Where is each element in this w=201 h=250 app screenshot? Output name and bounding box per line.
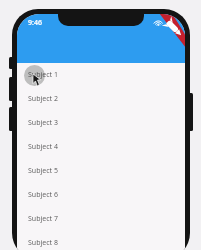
button[interactable]: Subject 3 [17,111,185,135]
staticText: 9:46 [28,18,42,28]
staticText: Subject 5 [28,166,58,176]
button[interactable]: Subject 6 [17,183,185,207]
button[interactable]: Subject 7 [17,207,185,231]
staticText: Subject 1 [28,70,58,80]
staticText: Subject 6 [28,190,58,200]
button[interactable]: Subject 5 [17,159,185,183]
button[interactable]: Subject 2 [17,87,185,111]
staticText: Subject 7 [28,214,58,224]
staticText: Subject 8 [28,238,58,248]
other: Rocket badge [143,14,185,56]
staticText: Subject 2 [28,94,58,104]
button[interactable]: Subject 4 [17,135,185,159]
staticText: Subject 3 [28,118,58,128]
staticText: Subject 4 [28,142,58,152]
button[interactable]: Subject 1 [17,63,185,87]
button[interactable]: Subject 8 [17,231,185,250]
